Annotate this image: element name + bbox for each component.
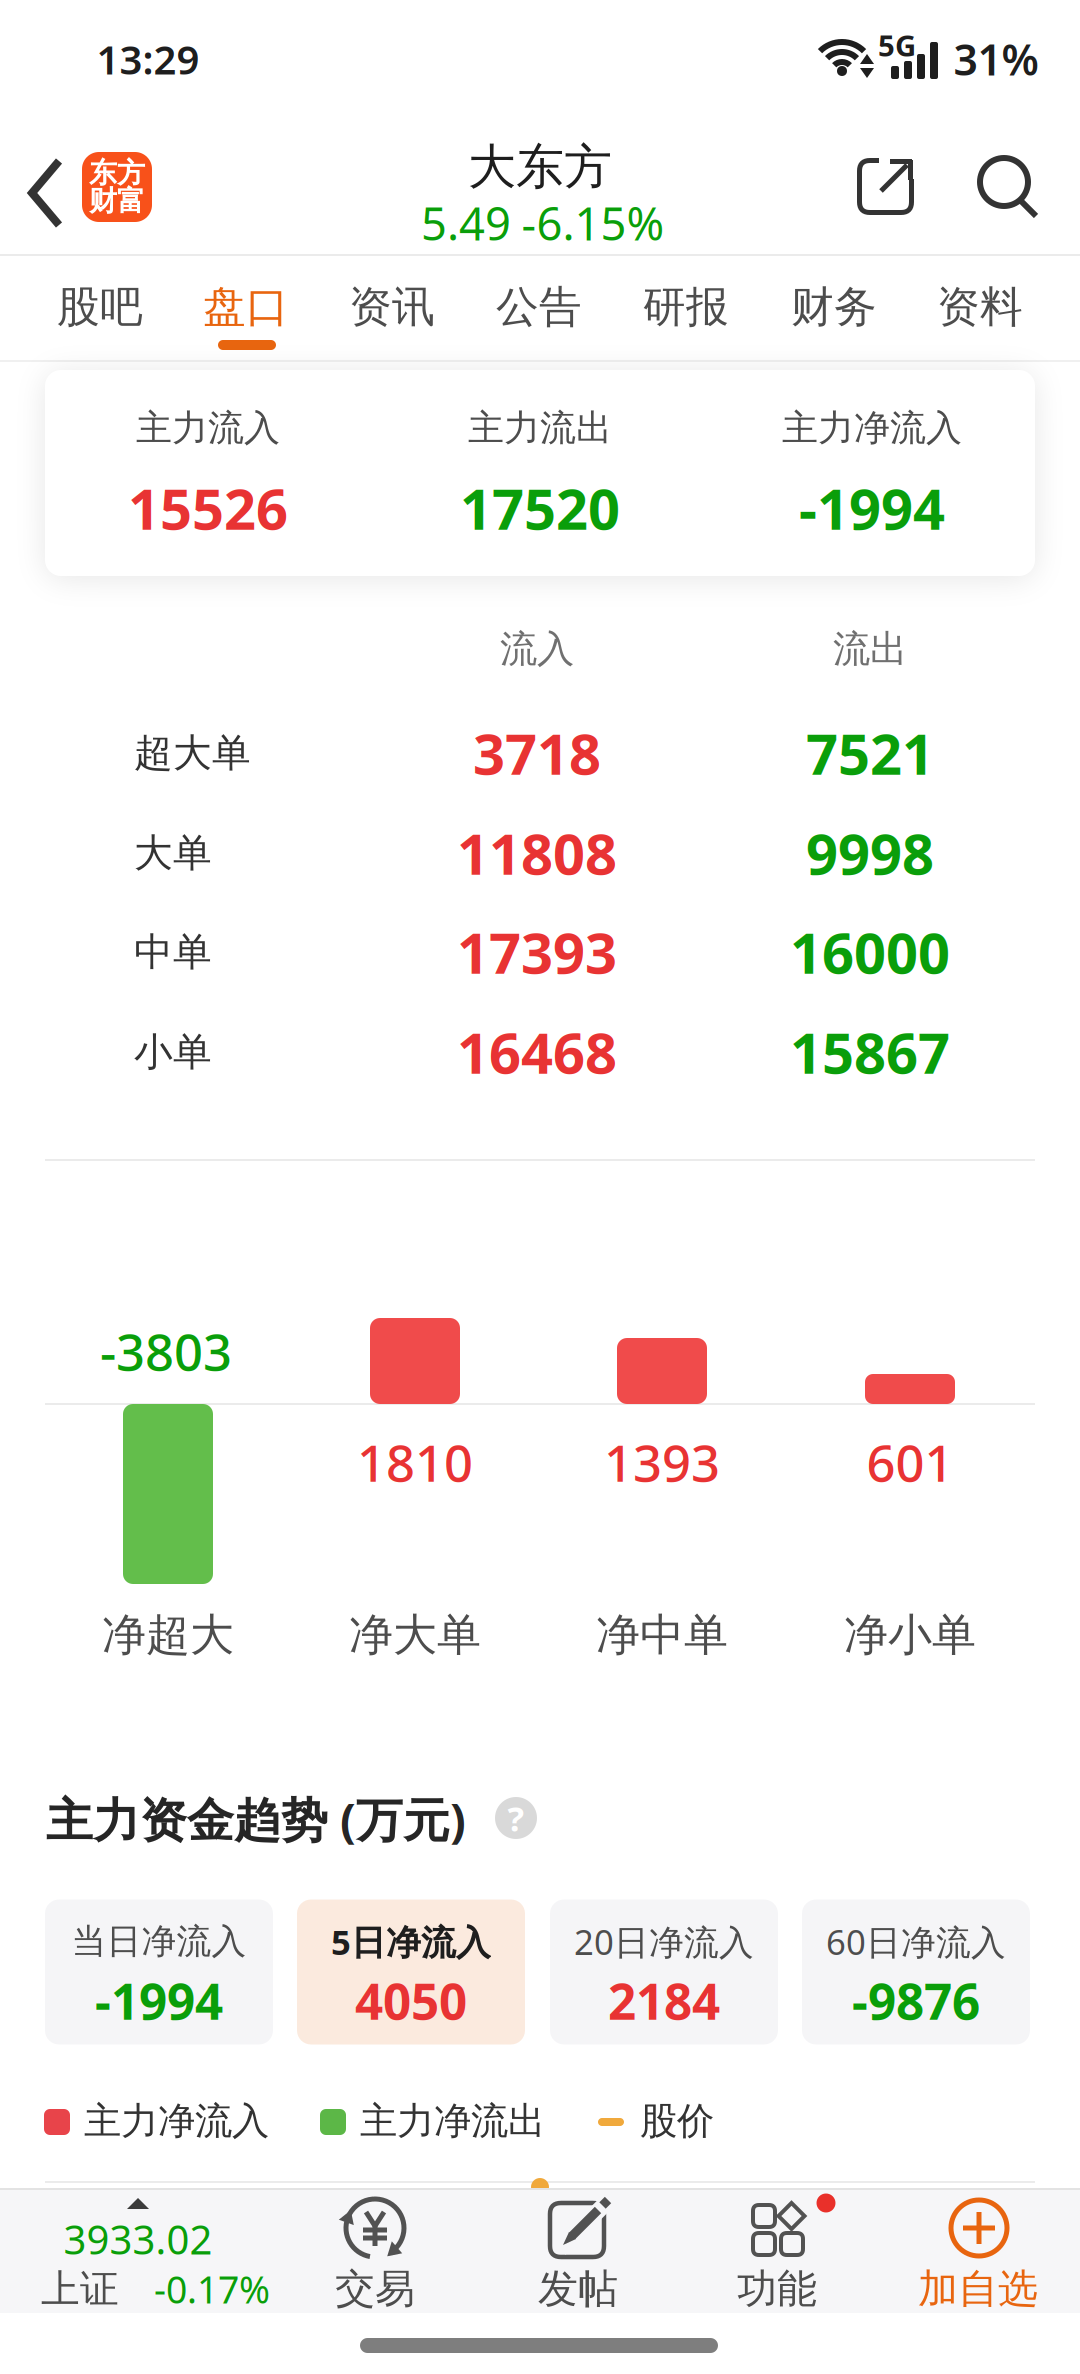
staticText: 财务 (791, 281, 877, 333)
button[interactable]: 功能 (678, 2190, 878, 2314)
staticText: -3803 (100, 1317, 232, 1385)
button[interactable] (857, 158, 915, 216)
button[interactable]: 5日净流入 (297, 1899, 525, 2044)
staticText: 超大单 (134, 729, 251, 777)
staticText: 16468 (457, 1015, 617, 1089)
staticText: 5.49 (421, 193, 511, 253)
button[interactable]: 20日净流入 (550, 1899, 778, 2044)
staticText: 17520 (460, 471, 620, 545)
staticText: 流出 (833, 626, 907, 672)
button[interactable]: 资讯 (322, 257, 462, 357)
staticText: -1994 (95, 1968, 223, 2033)
button[interactable]: 资料 (910, 257, 1050, 357)
staticText: 主力流出 (468, 406, 612, 450)
staticText: 净中单 (596, 1608, 728, 1662)
staticText: 15526 (128, 471, 288, 545)
staticText: 小单 (134, 1028, 212, 1076)
staticText: 交易 (335, 2264, 415, 2313)
staticText: 净大单 (349, 1608, 481, 1662)
staticText: 5日净流入 (331, 1918, 491, 1964)
staticText: 主力净流入 (84, 2098, 269, 2144)
staticText: 主力净流入 (782, 406, 962, 450)
button[interactable]: 加自选 (878, 2190, 1078, 2314)
staticText: -9876 (852, 1968, 980, 2033)
staticText: 20日净流入 (574, 1918, 754, 1964)
staticText: 研报 (643, 281, 729, 333)
staticText: 2184 (608, 1968, 720, 2033)
staticText: 财富 (89, 184, 145, 218)
staticText: 中单 (134, 928, 212, 976)
button[interactable]: 股吧 (30, 257, 170, 357)
button[interactable]: 公告 (469, 257, 609, 357)
staticText: 主力净流出 (360, 2098, 545, 2144)
staticText: 5G (878, 25, 916, 64)
staticText: 主力流入 (136, 406, 280, 450)
button[interactable]: 交易 (275, 2190, 475, 2314)
staticText: 股吧 (57, 281, 143, 333)
staticText: 3718 (473, 716, 601, 790)
button[interactable]: 发帖 (478, 2190, 678, 2314)
staticText: 1393 (604, 1428, 720, 1496)
staticText: 发帖 (538, 2264, 618, 2313)
staticText: 3933.02 (63, 2212, 212, 2265)
staticText: ? (507, 1795, 524, 1841)
button[interactable]: 3933.02 (0, 2190, 280, 2314)
button[interactable]: ? (495, 1797, 537, 1839)
staticText: 60日净流入 (826, 1918, 1006, 1964)
staticText: 资料 (937, 281, 1023, 333)
staticText: 净超大 (102, 1608, 234, 1662)
staticText: 17393 (457, 915, 617, 989)
staticText: 16000 (790, 915, 950, 989)
staticText: 大单 (134, 829, 212, 877)
staticText: 上证 (41, 2265, 119, 2313)
staticText: 7521 (806, 716, 934, 790)
staticText: 盘口 (203, 281, 289, 333)
staticText: 净小单 (844, 1608, 976, 1662)
staticText: 9998 (806, 816, 934, 890)
staticText: 加自选 (918, 2264, 1038, 2313)
staticText: 当日净流入 (71, 1920, 246, 1963)
staticText: 公告 (496, 281, 582, 333)
button[interactable]: 60日净流入 (802, 1899, 1030, 2044)
staticText: 11808 (457, 816, 617, 890)
button[interactable]: 财务 (764, 257, 904, 357)
staticText: 大东方 (468, 137, 612, 196)
staticText: 1810 (357, 1428, 473, 1496)
staticText: 13:29 (96, 32, 199, 85)
staticText: 主力资金趋势 (万元) (46, 1788, 466, 1850)
staticText: -0.17% (154, 2264, 270, 2314)
staticText: 功能 (737, 2264, 817, 2313)
staticText: 4050 (355, 1968, 467, 2033)
staticText: 资讯 (349, 281, 435, 333)
staticText: 31% (953, 31, 1038, 87)
staticText: -1994 (799, 471, 945, 545)
button[interactable]: 当日净流入 (45, 1899, 273, 2044)
button[interactable] (19, 137, 89, 249)
staticText: 东方 (89, 156, 145, 190)
button[interactable] (978, 156, 1040, 220)
button[interactable] (45, 370, 1035, 576)
button[interactable]: 东方 (82, 152, 152, 222)
staticText: -6.15% (521, 193, 664, 253)
button[interactable]: 研报 (616, 257, 756, 357)
button[interactable]: 盘口 (176, 257, 316, 357)
staticText: 流入 (500, 626, 574, 672)
staticText: 601 (866, 1428, 953, 1496)
staticText: 15867 (790, 1015, 950, 1089)
staticText: 股价 (640, 2098, 714, 2144)
